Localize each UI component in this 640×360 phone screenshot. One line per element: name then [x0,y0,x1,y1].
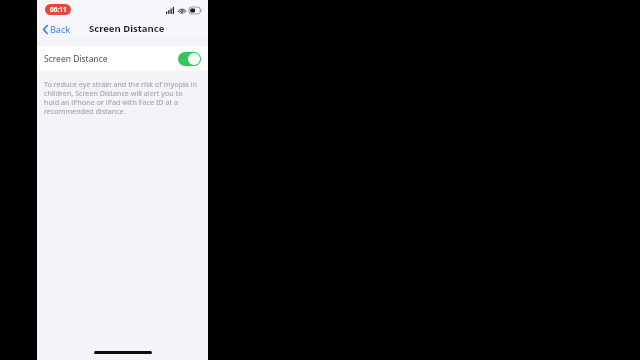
staticText: Back [50,23,71,35]
staticText: 06:11 [50,5,67,14]
staticText: Screen Distance [89,22,165,35]
button[interactable]: Back [41,21,73,37]
button[interactable]: Screen Distance [37,46,208,71]
staticText: To reduce eye strain and the risk of myo… [44,79,199,117]
button[interactable]: Screen Distance toggle, on [178,52,201,66]
staticText: Screen Distance [44,53,108,65]
